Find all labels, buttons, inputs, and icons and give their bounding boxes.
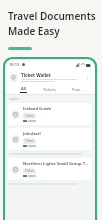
button[interactable]: Pass: [63, 84, 90, 94]
staticText: All: [21, 86, 26, 91]
button[interactable]: Tickets: [36, 84, 63, 94]
button[interactable]: All: [10, 84, 36, 94]
staticText: Ticket: [25, 139, 34, 143]
button[interactable]: Iceland Guide: [8, 103, 92, 125]
button[interactable]: Ticket Wallet: [9, 72, 91, 82]
button[interactable]: More options: [84, 74, 91, 81]
staticText: Northern Lights Small Group Tour: [23, 161, 89, 167]
button[interactable]: Jokulsarl: [8, 128, 92, 150]
staticText: Ticket: [25, 169, 34, 173]
staticText: 10:13: [9, 62, 20, 67]
staticText: Ticket Wallet: [21, 72, 51, 78]
staticText: Iceland Guide: [23, 106, 52, 112]
staticText: Jokulsarl: [23, 131, 41, 137]
staticText: Ticket: [25, 114, 34, 118]
staticText: Travel Documents: [8, 9, 96, 23]
button[interactable]: Northern Lights Small Group Tour: [8, 158, 92, 180]
staticText: Tickets: [43, 87, 56, 92]
staticText: Made Easy: [8, 24, 60, 38]
staticText: Pass: [72, 87, 81, 92]
